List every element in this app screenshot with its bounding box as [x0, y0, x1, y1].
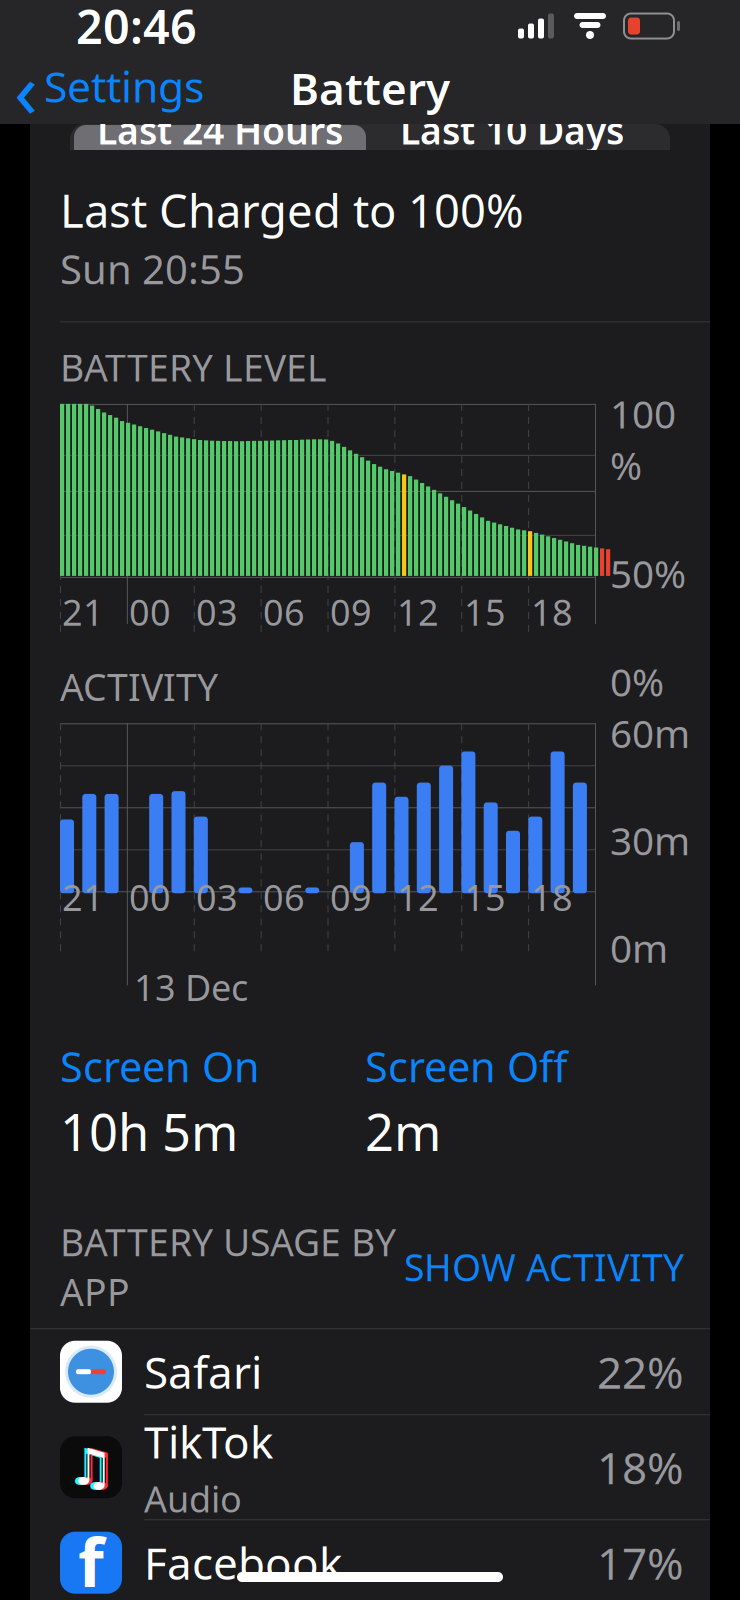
staticText: 60m	[610, 707, 690, 759]
staticText: 00	[129, 588, 171, 636]
staticText: 09	[330, 873, 372, 921]
staticText: 22%	[597, 1342, 684, 1401]
staticText: 100%	[610, 388, 676, 491]
staticText: TikTok	[144, 1412, 273, 1470]
button[interactable]: Safari	[30, 1329, 710, 1415]
staticText: ♫	[68, 1438, 113, 1496]
staticText: ♫	[71, 1438, 116, 1496]
staticText: f	[78, 1517, 104, 1600]
staticText: Screen On	[60, 1039, 260, 1094]
staticText: 17%	[597, 1533, 684, 1592]
staticText: 20:46	[76, 0, 197, 57]
staticText: 0m	[610, 922, 668, 973]
staticText: ACTIVITY	[60, 662, 218, 711]
staticText: 18	[531, 588, 573, 636]
staticText: 03	[196, 873, 238, 921]
staticText: ♫	[65, 1438, 110, 1496]
staticText: 0%	[610, 656, 664, 707]
staticText: 21	[62, 873, 104, 921]
staticText: 15	[464, 588, 506, 636]
staticText: Battery	[290, 59, 450, 117]
staticText: 09	[330, 588, 372, 636]
staticText: 00	[129, 873, 171, 921]
button[interactable]: Last 24 Hours	[70, 124, 670, 170]
staticText: 12	[397, 873, 439, 921]
staticText: 50%	[610, 548, 686, 599]
staticText: 15	[464, 873, 506, 921]
staticText: 21	[62, 588, 104, 636]
staticText: 06	[263, 873, 305, 921]
staticText: Settings	[44, 58, 204, 114]
button[interactable]: SHOW ACTIVITY	[404, 1242, 684, 1291]
staticText: 13 Dec	[134, 963, 248, 1011]
staticText: Safari	[144, 1342, 262, 1401]
staticText: ‹	[14, 37, 38, 139]
staticText: SHOW ACTIVITY	[404, 1242, 684, 1291]
staticText: Audio	[144, 1474, 242, 1522]
staticText: 12	[397, 588, 439, 636]
staticText: 30m	[610, 815, 690, 866]
staticText: Last 10 Days	[400, 105, 624, 155]
staticText: 06	[263, 588, 305, 636]
staticText: 18	[531, 873, 573, 921]
staticText: Facebook	[144, 1533, 342, 1592]
button[interactable]: ‹	[0, 37, 214, 139]
button[interactable]: ♫	[30, 1415, 710, 1520]
staticText: Sun 20:55	[60, 242, 245, 295]
button[interactable]: f	[30, 1520, 710, 1600]
staticText: Screen Off	[365, 1039, 567, 1094]
staticText: Last Charged to 100%	[60, 180, 524, 240]
staticText: 18%	[597, 1438, 684, 1496]
staticText: BATTERY USAGE BY APP	[60, 1217, 396, 1316]
staticText: Last 24 Hours	[97, 105, 343, 155]
staticText: 2m	[365, 1098, 441, 1165]
staticText: BATTERY LEVEL	[60, 342, 327, 392]
staticText: 03	[196, 588, 238, 636]
staticText: 10h 5m	[60, 1098, 238, 1165]
